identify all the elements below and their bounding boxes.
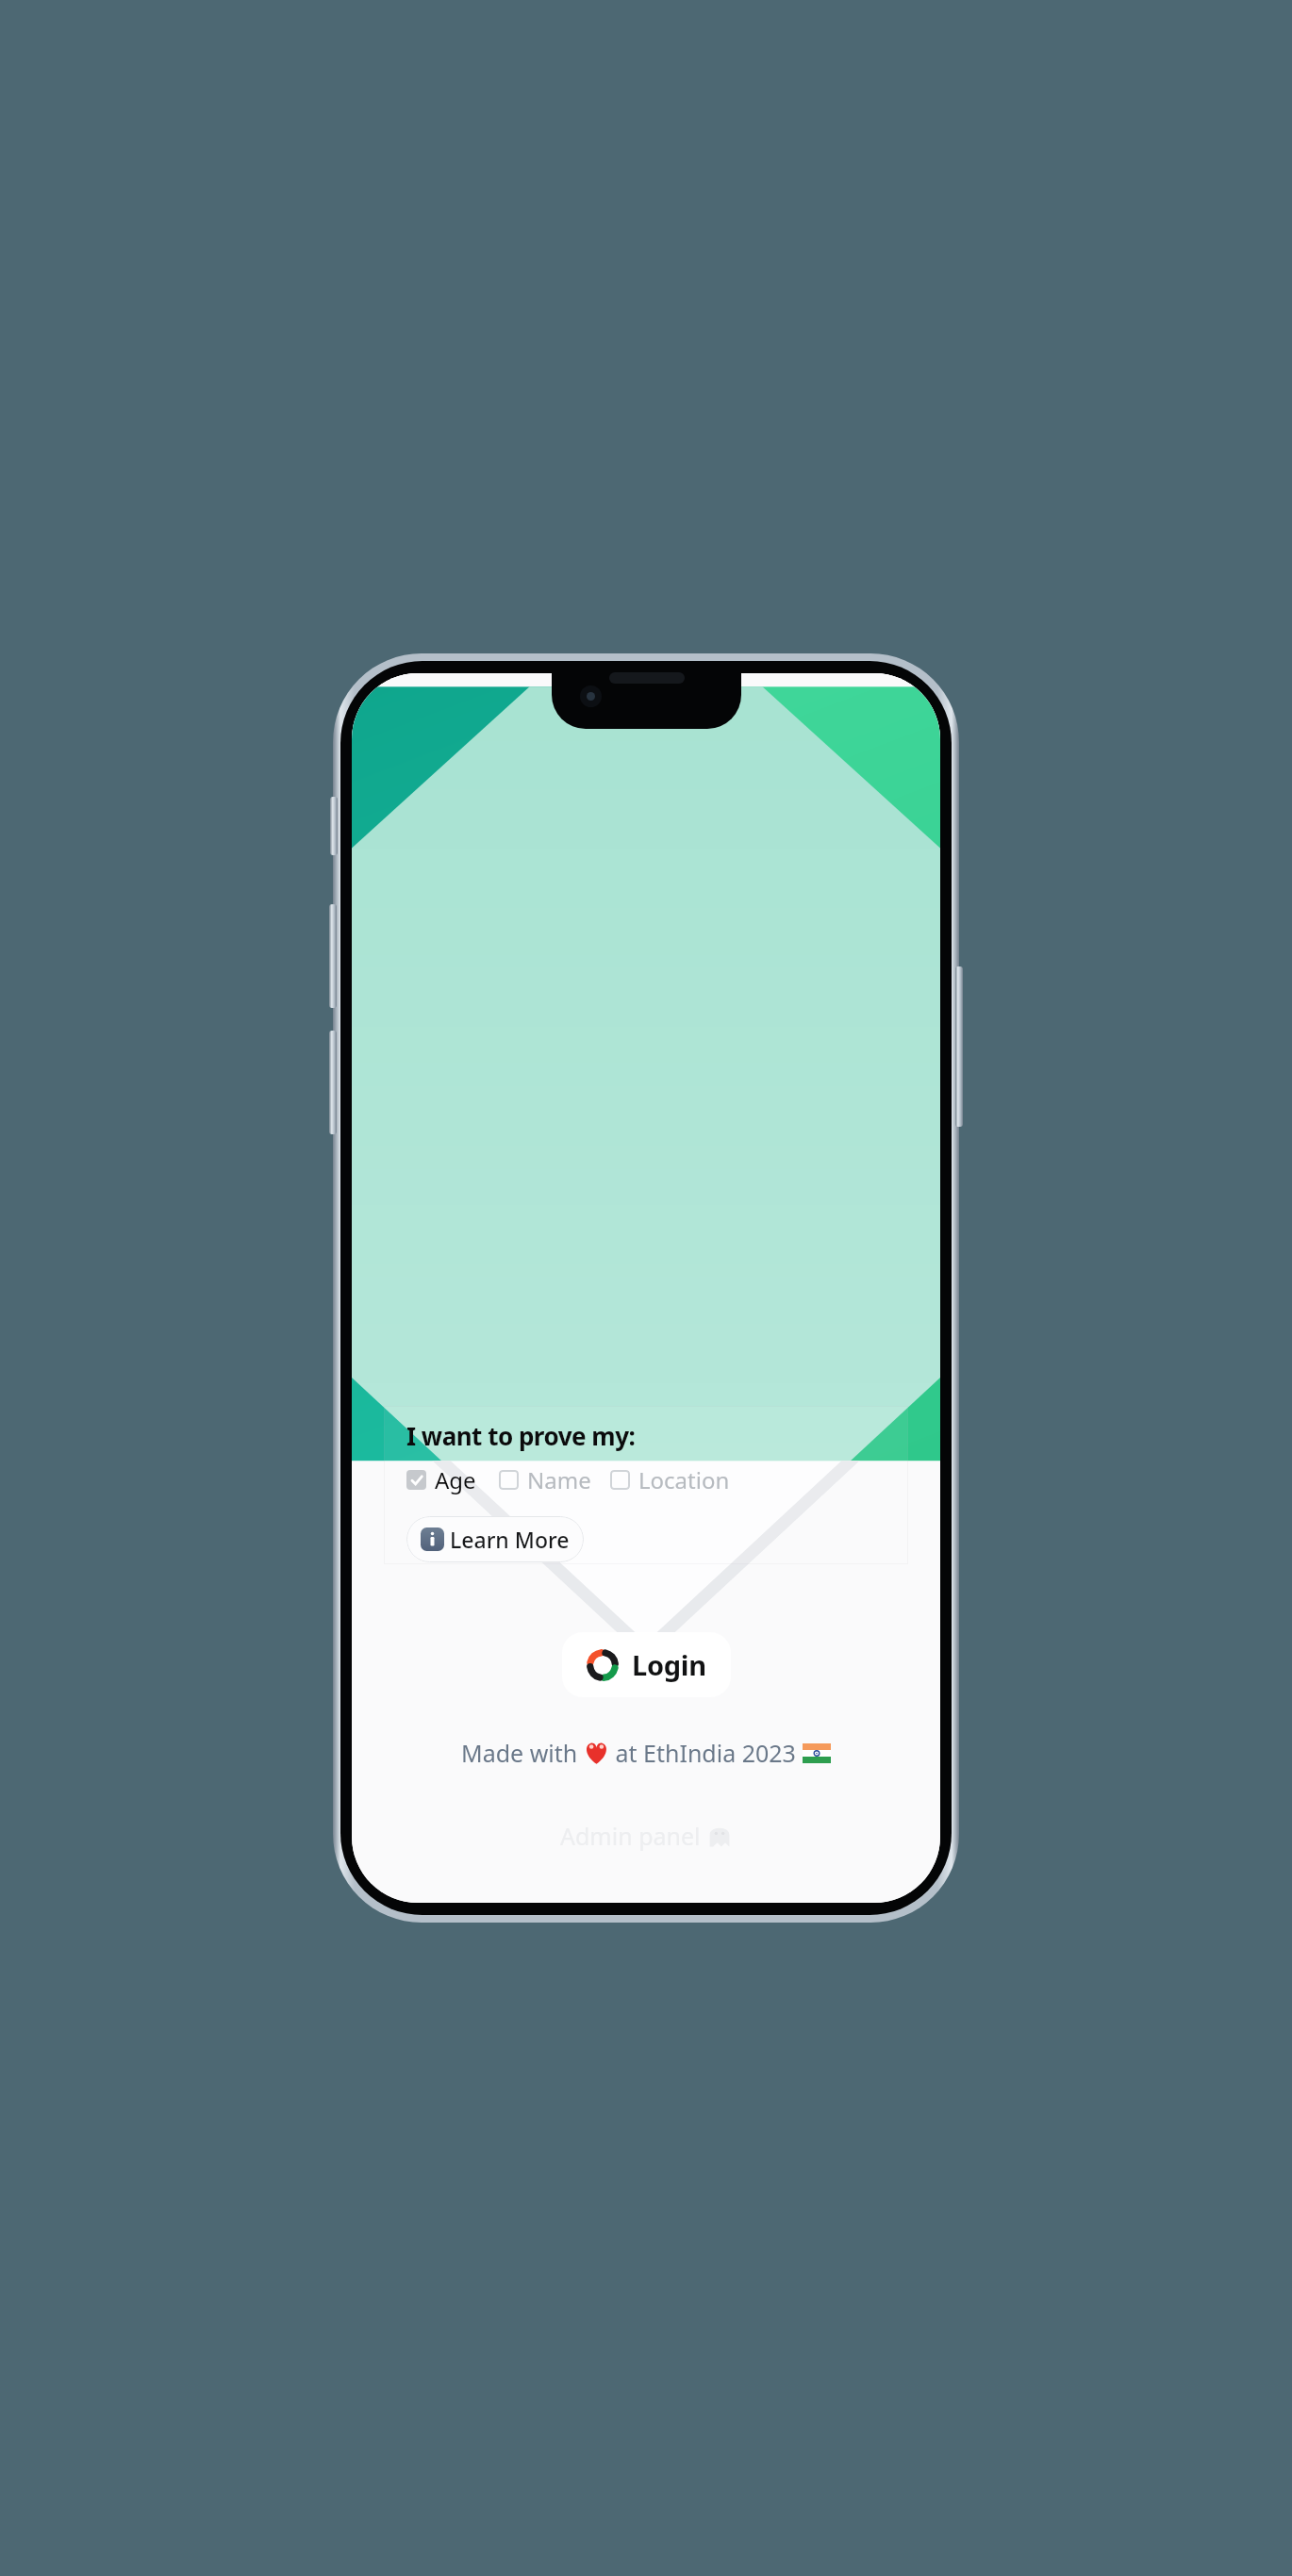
button[interactable]: Login xyxy=(562,1632,731,1697)
staticText: Name xyxy=(527,1464,591,1495)
button[interactable]: I want to prove my: xyxy=(384,1406,908,1564)
staticText: at EthIndia 2023 xyxy=(609,1737,803,1769)
other: Ghost xyxy=(707,1824,732,1848)
button[interactable]: Admin panel xyxy=(352,1820,940,1852)
button[interactable]: Location xyxy=(610,1462,730,1497)
staticText: Location xyxy=(638,1464,730,1495)
staticText: Age xyxy=(435,1464,476,1495)
button[interactable]: Learn More xyxy=(406,1516,584,1562)
button[interactable]: Name xyxy=(499,1462,591,1497)
staticText: Admin panel xyxy=(560,1820,707,1852)
button[interactable]: Age xyxy=(406,1462,476,1497)
staticText: Made with xyxy=(461,1737,584,1769)
staticText: Login xyxy=(632,1646,706,1683)
staticText: Learn More xyxy=(450,1525,570,1554)
staticText: I want to prove my: xyxy=(406,1419,636,1452)
